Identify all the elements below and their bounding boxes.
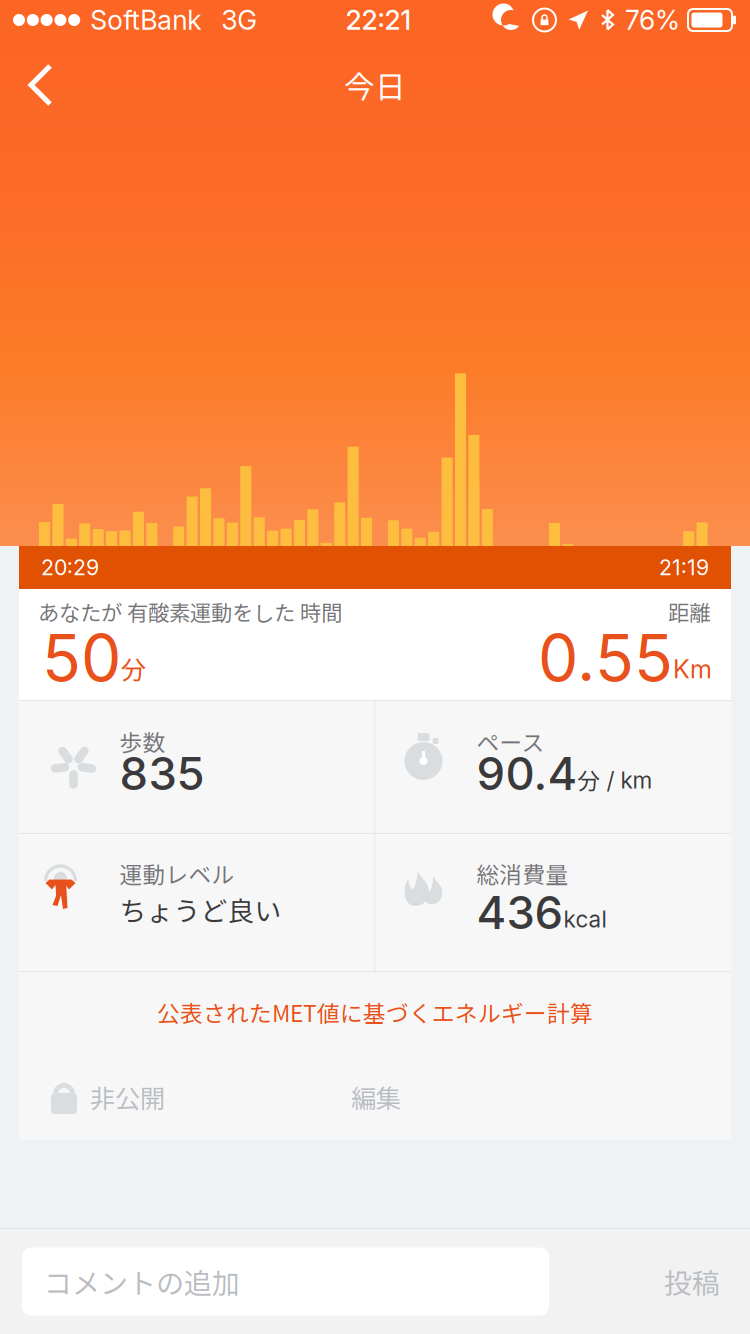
staticText: 90.4 bbox=[476, 746, 577, 801]
button[interactable]: 編集 bbox=[335, 1070, 417, 1124]
staticText: Km bbox=[673, 654, 712, 684]
staticText: 距離 bbox=[668, 596, 710, 627]
staticText: 0.55 bbox=[538, 619, 673, 696]
staticText: 436 bbox=[476, 885, 563, 940]
staticText: 公表されたMET値に基づくエネルギー計算 bbox=[157, 996, 593, 1028]
staticText: 3G bbox=[221, 4, 257, 36]
button[interactable]: 非公開 bbox=[19, 1070, 177, 1124]
staticText: ペース bbox=[476, 725, 544, 758]
staticText: 総消費量 bbox=[476, 857, 568, 890]
staticText: 編集 bbox=[351, 1079, 401, 1115]
staticText: 50 bbox=[42, 619, 121, 696]
staticText: 投稿 bbox=[664, 1261, 720, 1302]
staticText: 分 bbox=[577, 763, 600, 796]
staticText: ちょうど良い bbox=[119, 890, 281, 929]
button[interactable]: Back bbox=[0, 40, 78, 130]
button[interactable]: 投稿 bbox=[634, 1229, 750, 1334]
staticText: 76% bbox=[625, 4, 680, 36]
staticText: あなたが 有酸素運動をした 時間 bbox=[38, 596, 342, 627]
staticText: 歩数 bbox=[119, 725, 165, 758]
button[interactable]: 公表されたMET値に基づくエネルギー計算 bbox=[19, 981, 731, 1043]
staticText: 21:19 bbox=[659, 555, 709, 580]
button[interactable]: コメントの追加 bbox=[0, 1247, 549, 1315]
staticText: SoftBank bbox=[90, 4, 201, 36]
staticText: 22:21 bbox=[346, 4, 412, 36]
staticText: 20:29 bbox=[41, 555, 99, 580]
staticText: 運動レベル bbox=[119, 857, 234, 890]
staticText: コメントの追加 bbox=[44, 1261, 240, 1302]
staticText: / km bbox=[600, 766, 652, 794]
staticText: kcal bbox=[563, 905, 606, 933]
staticText: 835 bbox=[119, 746, 204, 801]
staticText: 今日 bbox=[344, 63, 406, 107]
staticText: 分 bbox=[121, 650, 146, 686]
staticText: 非公開 bbox=[90, 1079, 165, 1115]
